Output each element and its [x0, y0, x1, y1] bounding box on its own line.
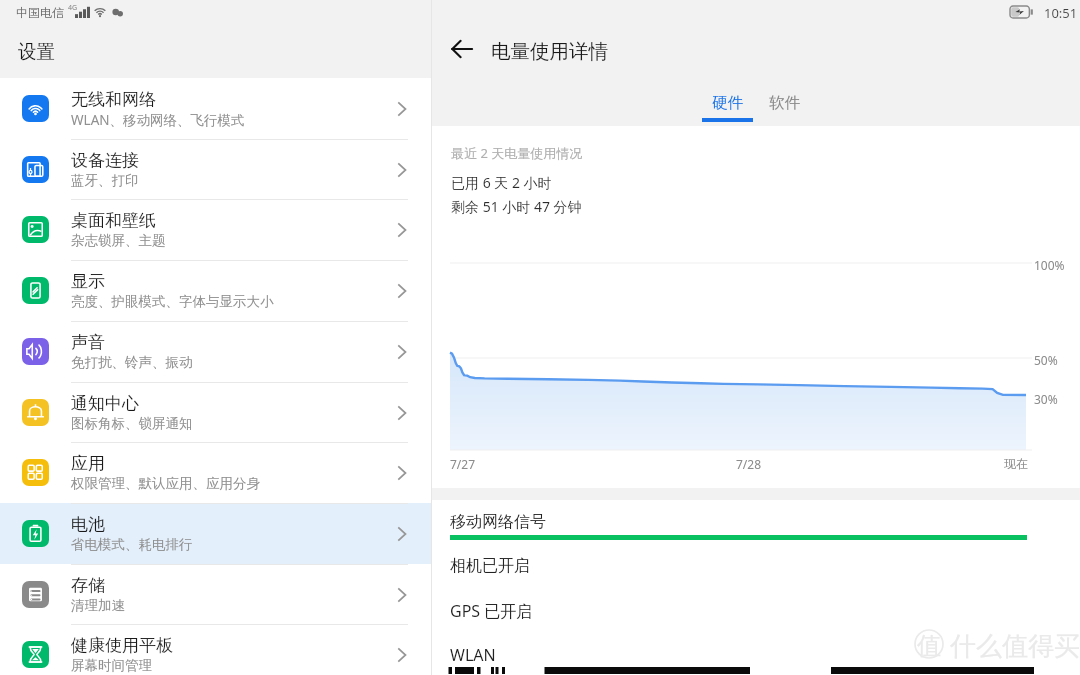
staticText: 省电模式、耗电排行 [71, 536, 193, 553]
staticText: 设置 [18, 40, 55, 63]
button[interactable]: 电池 [0, 503, 431, 564]
staticText: 免打扰、铃声、振动 [71, 354, 193, 371]
staticText: 剩余 51 小时 47 分钟 [451, 197, 582, 216]
staticText: 屏幕时间管理 [71, 657, 152, 674]
staticText: 应用 [71, 453, 105, 474]
staticText: WLAN [450, 644, 496, 666]
staticText: 已用 6 天 2 小时 [451, 173, 552, 192]
staticText: 最近 2 天电量使用情况 [451, 144, 583, 162]
staticText: 7/27 [450, 456, 476, 472]
staticText: 图标角标、锁屏通知 [71, 415, 193, 432]
staticText: 移动网络信号 [450, 512, 546, 532]
staticText: 显示 [71, 271, 105, 292]
staticText: 现在 [1004, 456, 1028, 471]
staticText: 4G [68, 3, 78, 13]
staticText: 杂志锁屏、主题 [71, 232, 166, 249]
staticText: 什么值得买 [950, 630, 1080, 663]
staticText: 健康使用平板 [71, 635, 173, 656]
staticText: 10:51 [1044, 4, 1078, 22]
staticText: GPS 已开启 [450, 600, 533, 622]
button[interactable]: 健康使用平板 [0, 624, 431, 675]
button[interactable]: 硬件 [691, 77, 763, 126]
button[interactable]: 软件 [753, 77, 815, 126]
staticText: 无线和网络 [71, 89, 156, 110]
staticText: 通知中心 [71, 393, 139, 414]
button[interactable]: 通知中心 [0, 382, 431, 443]
button[interactable]: 桌面和壁纸 [0, 199, 431, 260]
staticText: 权限管理、默认应用、应用分身 [71, 475, 260, 492]
staticText: 清理加速 [71, 597, 125, 614]
staticText: 声音 [71, 332, 105, 353]
staticText: 中国电信 [16, 5, 64, 20]
staticText: 亮度、护眼模式、字体与显示大小 [71, 293, 274, 310]
staticText: 软件 [769, 93, 800, 113]
staticText: 7/28 [736, 456, 762, 472]
staticText: 相机已开启 [450, 556, 530, 576]
button[interactable]: 显示 [0, 260, 431, 321]
button[interactable]: Back [444, 31, 480, 67]
staticText: 桌面和壁纸 [71, 210, 156, 231]
staticText: 存储 [71, 575, 105, 596]
staticText: 设备连接 [71, 150, 139, 171]
staticText: 30% [1034, 391, 1058, 407]
button[interactable]: 应用 [0, 442, 431, 503]
button[interactable]: 无线和网络 [0, 78, 431, 139]
staticText: 100% [1034, 257, 1065, 273]
button[interactable]: 存储 [0, 564, 431, 625]
staticText: 电量使用详情 [491, 39, 608, 64]
staticText: 50% [1034, 352, 1058, 368]
staticText: 值 [917, 631, 941, 661]
staticText: 蓝牙、打印 [71, 172, 139, 189]
staticText: 电池 [71, 514, 105, 535]
staticText: 硬件 [712, 93, 743, 113]
staticText: WLAN、移动网络、飞行模式 [71, 111, 245, 129]
button[interactable]: 设备连接 [0, 139, 431, 200]
button[interactable]: 声音 [0, 321, 431, 382]
